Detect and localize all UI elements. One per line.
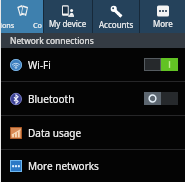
staticText: Bluetooth: [28, 92, 75, 106]
staticText: My device: [49, 18, 87, 29]
staticText: Wi-Fi: [28, 58, 51, 72]
staticText: More networks: [28, 159, 99, 173]
staticText: Accounts: [99, 19, 134, 30]
staticText: Data usage: [28, 126, 82, 140]
staticText: Network connections: [10, 35, 94, 46]
staticText: ions: [0, 20, 15, 30]
other: Off: [144, 92, 178, 105]
button[interactable]: Bluetooth: [0, 82, 185, 115]
button[interactable]: Accounts: [93, 0, 139, 33]
other: On: [144, 58, 178, 71]
staticText: More: [153, 18, 173, 29]
button[interactable]: Data usage: [0, 116, 185, 149]
button[interactable]: More: [140, 0, 185, 33]
staticText: Co: [33, 20, 43, 30]
button[interactable]: Wi-Fi: [0, 48, 185, 81]
button[interactable]: My device: [44, 0, 92, 33]
button[interactable]: More networks: [0, 150, 185, 182]
button[interactable]: ions: [0, 0, 43, 33]
